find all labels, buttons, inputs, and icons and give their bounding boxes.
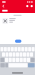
- button[interactable]: Key: [26, 52, 29, 57]
- button[interactable]: Key: [12, 52, 15, 57]
- button[interactable]: Key: [21, 47, 24, 51]
- button[interactable]: Key: [16, 52, 19, 57]
- button[interactable]: Shift: [0, 58, 4, 62]
- button[interactable]: Key: [9, 52, 12, 57]
- button[interactable]: Key: [11, 47, 14, 51]
- button[interactable]: Key: [9, 58, 12, 62]
- button[interactable]: Compose: [31, 5, 33, 7]
- button[interactable]: Delete: [31, 58, 35, 62]
- button[interactable]: Key: [12, 58, 15, 62]
- button[interactable]: Key: [30, 52, 33, 57]
- button[interactable]: Key: [20, 58, 23, 62]
- button[interactable]: Key: [14, 47, 17, 51]
- button[interactable]: Key: [19, 52, 22, 57]
- button[interactable]: Key: [28, 47, 31, 51]
- button[interactable]: Key: [2, 52, 5, 57]
- button[interactable]: Key: [4, 47, 7, 51]
- button[interactable]: Key: [23, 58, 26, 62]
- button[interactable]: Key: [0, 47, 3, 51]
- button[interactable]: Send: [28, 63, 35, 67]
- button[interactable]: Space: [9, 63, 27, 67]
- button[interactable]: Numbers: [0, 63, 5, 67]
- button[interactable]: Key: [5, 52, 8, 57]
- button[interactable]: Key: [25, 47, 28, 51]
- button[interactable]: Back: [2, 4, 5, 8]
- button[interactable]: Key: [7, 47, 10, 51]
- button[interactable]: Key: [23, 52, 26, 57]
- button[interactable]: Search: [26, 5, 28, 7]
- button[interactable]: Key: [32, 47, 35, 51]
- button[interactable]: Emoji: [5, 63, 8, 67]
- button[interactable]: Key: [18, 47, 21, 51]
